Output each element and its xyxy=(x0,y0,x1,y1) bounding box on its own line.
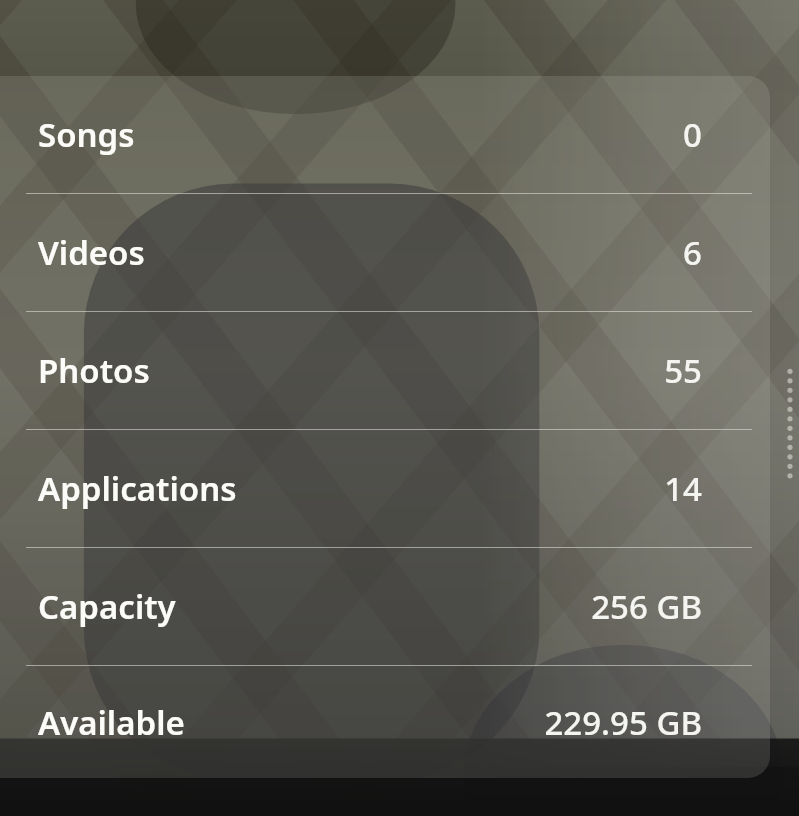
staticText: 229.95 GB xyxy=(544,700,702,745)
button[interactable]: Capacity xyxy=(0,548,770,665)
staticText: 6 xyxy=(683,230,702,275)
staticText: Photos xyxy=(38,348,150,393)
button[interactable]: Applications xyxy=(0,430,770,547)
staticText: Applications xyxy=(38,466,237,511)
button[interactable]: Videos xyxy=(0,194,770,311)
staticText: Capacity xyxy=(38,584,176,629)
button[interactable]: Songs xyxy=(0,76,770,193)
staticText: Videos xyxy=(38,230,145,275)
staticText: Songs xyxy=(38,112,135,157)
button[interactable]: Available xyxy=(0,666,770,778)
staticText: 55 xyxy=(664,348,702,393)
staticText: 14 xyxy=(664,466,702,511)
staticText: 256 GB xyxy=(591,584,702,629)
staticText: 0 xyxy=(683,112,702,157)
button[interactable]: Photos xyxy=(0,312,770,429)
staticText: Available xyxy=(38,700,185,745)
